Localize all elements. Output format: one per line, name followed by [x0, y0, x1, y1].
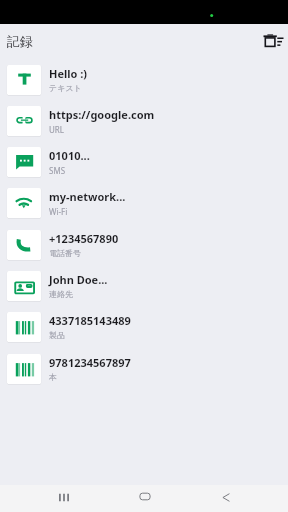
button[interactable]: 01010... [0, 140, 288, 181]
button[interactable]: John Doe... [0, 264, 288, 305]
button[interactable]: Home [125, 485, 165, 512]
staticText: +1234567890 [49, 231, 119, 246]
staticText: Wi-Fi [49, 206, 68, 217]
button[interactable]: my-network... [0, 181, 288, 222]
button[interactable]: Back [206, 485, 246, 512]
staticText: 本 [49, 372, 57, 382]
staticText: URL [49, 124, 65, 135]
button[interactable]: 9781234567897 [0, 347, 288, 388]
staticText: 01010... [49, 148, 90, 163]
staticText: John Doe... [49, 272, 108, 287]
staticText: 連絡先 [49, 289, 73, 299]
staticText: 電話番号 [49, 248, 81, 258]
button[interactable]: +1234567890 [0, 223, 288, 264]
staticText: テキスト [49, 83, 82, 93]
staticText: https://google.com [49, 107, 155, 122]
staticText: my-network... [49, 189, 126, 204]
staticText: Hello :) [49, 66, 88, 81]
staticText: SMS [49, 165, 66, 176]
button[interactable]: 4337185143489 [0, 305, 288, 346]
staticText: 記録 [7, 33, 33, 49]
button[interactable]: https://google.com [0, 99, 288, 140]
staticText: 4337185143489 [49, 313, 131, 328]
staticText: 製品 [49, 330, 65, 340]
button[interactable]: Recent apps [44, 485, 84, 512]
staticText: 9781234567897 [49, 355, 131, 370]
button[interactable]: Delete all history [256, 25, 288, 57]
button[interactable]: Hello :) [0, 58, 288, 99]
